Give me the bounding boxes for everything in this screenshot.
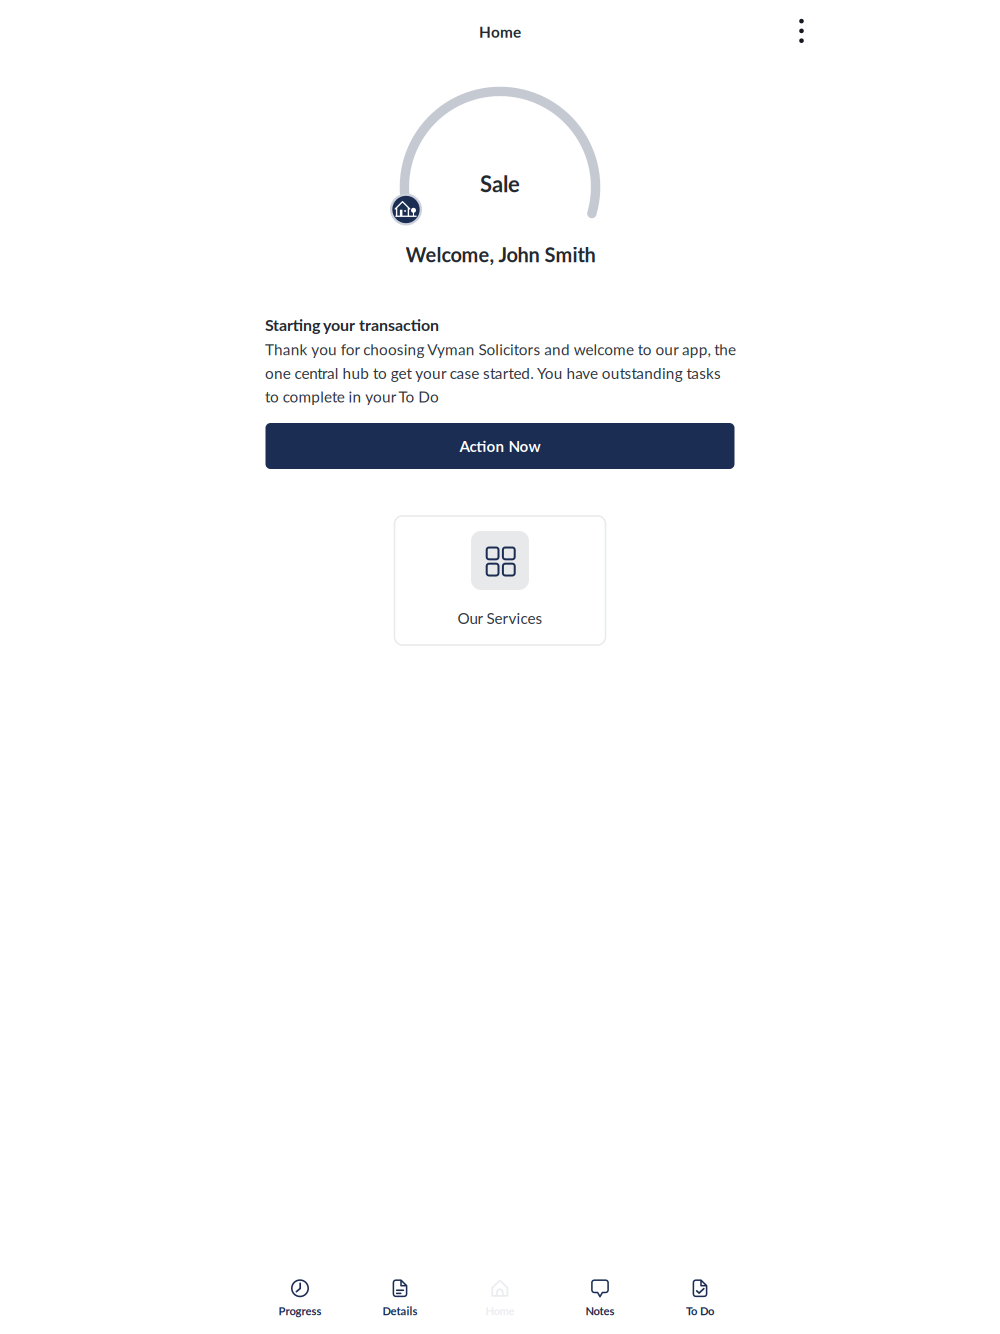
button[interactable]: To Do (650, 1275, 750, 1321)
button[interactable]: Our Services (394, 516, 605, 645)
staticText: Details (382, 1304, 417, 1318)
button[interactable]: Home (450, 1275, 550, 1321)
staticText: Our Services (457, 609, 542, 627)
button[interactable]: Action Now (265, 423, 734, 469)
staticText: Welcome, John Smith (405, 242, 595, 266)
staticText: Progress (278, 1304, 321, 1318)
staticText: Home (485, 1304, 514, 1318)
button[interactable]: Progress (250, 1275, 350, 1321)
staticText: Sale (480, 171, 520, 197)
staticText: To Do (686, 1304, 714, 1318)
staticText: Thank you for choosing Vyman Solicitors … (265, 340, 736, 406)
button[interactable]: More options (779, 7, 823, 55)
staticText: Starting your transaction (265, 315, 439, 334)
button[interactable]: Notes (550, 1275, 650, 1321)
staticText: Home (479, 22, 521, 41)
button[interactable]: Details (350, 1275, 450, 1321)
staticText: Notes (585, 1304, 614, 1318)
staticText: Action Now (459, 437, 540, 455)
